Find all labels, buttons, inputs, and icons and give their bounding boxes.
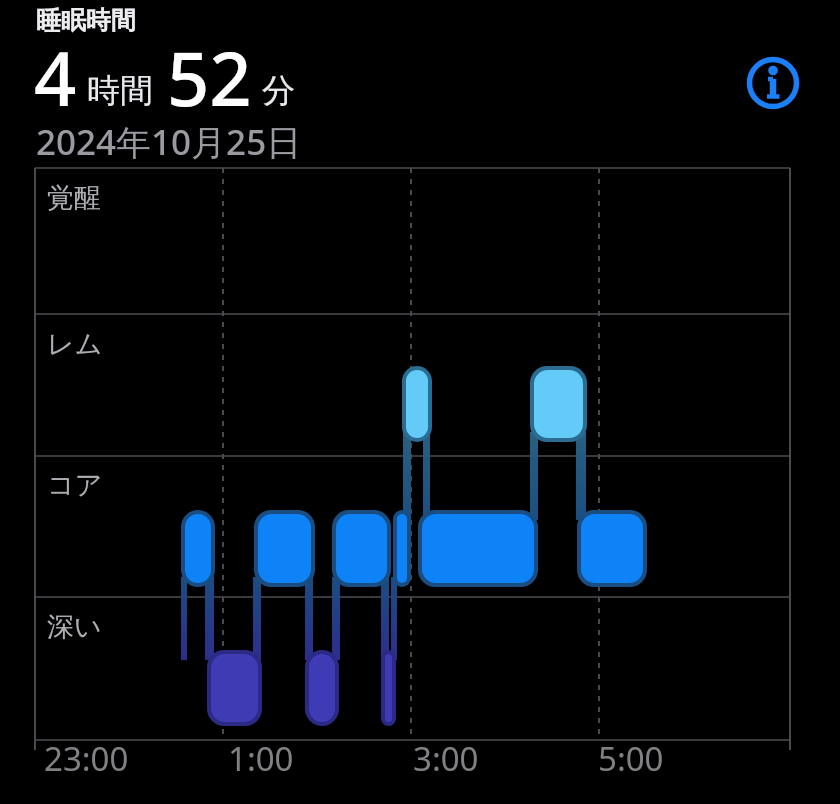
staticText: レム <box>47 327 103 361</box>
staticText: 覚醒 <box>47 181 101 215</box>
staticText: 52 <box>167 27 252 128</box>
staticText: 睡眠時間 <box>36 5 136 36</box>
staticText: 1:00 <box>228 736 294 781</box>
staticText: 深い <box>47 610 102 644</box>
staticText: 4 <box>34 27 77 128</box>
staticText: 分 <box>262 70 295 112</box>
staticText: 時間 <box>87 70 153 112</box>
staticText: コア <box>47 468 103 502</box>
staticText: 23:00 <box>44 736 129 781</box>
button[interactable] <box>744 54 802 112</box>
staticText: 3:00 <box>413 736 479 781</box>
staticText: 2024年10月25日 <box>36 118 302 166</box>
staticText: 5:00 <box>598 736 664 781</box>
